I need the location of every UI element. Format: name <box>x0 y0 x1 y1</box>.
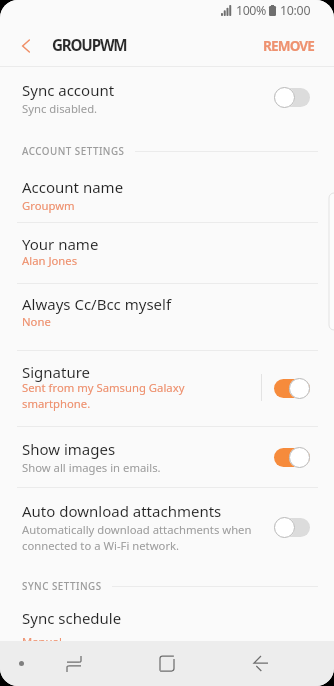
button[interactable]: Sync schedule <box>0 601 334 641</box>
button[interactable]: Account name <box>0 167 334 222</box>
staticText: Your name <box>22 234 99 254</box>
staticText: ACCOUNT SETTINGS <box>22 145 125 158</box>
staticText: Sync schedule <box>22 608 122 628</box>
staticText: Sent from my Samsung Galaxy <box>22 380 185 395</box>
button[interactable]: Sync account <box>0 67 334 132</box>
button[interactable]: Back <box>237 641 285 686</box>
button[interactable]: Signature <box>0 351 334 426</box>
staticText: Sync account <box>22 80 115 100</box>
button[interactable]: Recents <box>50 641 98 686</box>
staticText: Show images <box>22 439 116 459</box>
staticText: None <box>22 314 51 329</box>
staticText: 10:00 <box>280 2 311 19</box>
staticText: Always Cc/Bcc myself <box>22 294 172 314</box>
button[interactable]: Always Cc/Bcc myself <box>0 284 334 350</box>
staticText: Alan Jones <box>22 253 78 268</box>
staticText: Auto download attachments <box>22 501 222 521</box>
staticText: connected to a Wi-Fi network. <box>22 538 180 553</box>
staticText: Sync disabled. <box>22 101 98 116</box>
button[interactable]: Home <box>143 641 191 686</box>
button[interactable]: Your name <box>0 223 334 283</box>
staticText: Automatically download attachments when <box>22 522 252 537</box>
staticText: Show all images in emails. <box>22 460 161 475</box>
staticText: Signature <box>22 362 91 382</box>
button[interactable]: Navigate up <box>0 26 52 66</box>
button[interactable]: REMOVE <box>245 26 334 66</box>
staticText: REMOVE <box>263 36 315 55</box>
staticText: 100% <box>236 2 266 19</box>
staticText: SYNC SETTINGS <box>22 580 102 593</box>
staticText: GROUPWM <box>52 35 127 56</box>
staticText: Manual <box>22 634 62 649</box>
button[interactable]: Show images <box>0 427 334 487</box>
button[interactable]: Auto download attachments <box>0 488 334 566</box>
staticText: smartphone. <box>22 396 91 411</box>
staticText: Account name <box>22 177 124 197</box>
staticText: Groupwm <box>22 198 75 213</box>
